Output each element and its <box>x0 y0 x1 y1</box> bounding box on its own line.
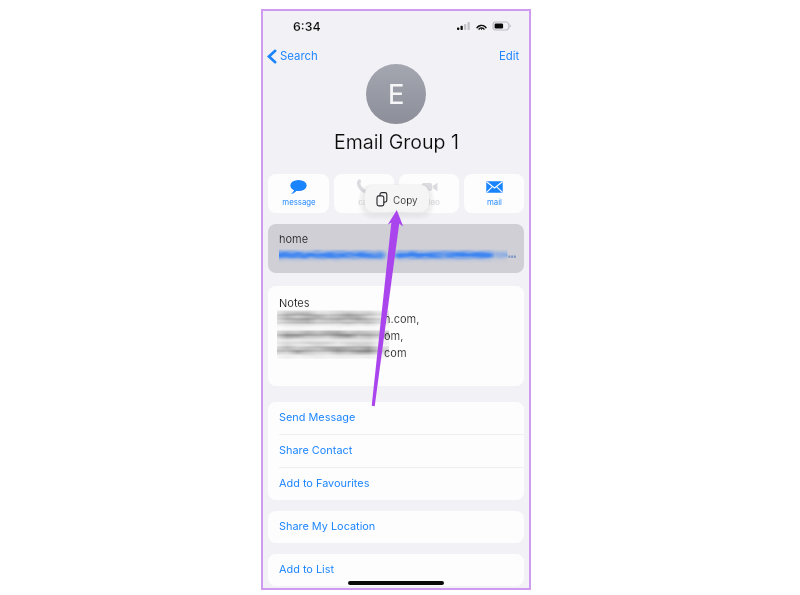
staticText: video <box>419 197 440 206</box>
staticText: message <box>282 197 316 206</box>
staticText: Share Contact <box>279 443 353 456</box>
staticText: Search <box>280 49 318 63</box>
button[interactable]: call <box>334 174 394 213</box>
staticText: Notes <box>279 296 310 309</box>
staticText: Add to Favourites <box>279 476 370 489</box>
button[interactable]: Copy <box>365 185 429 212</box>
staticText: com <box>384 346 407 359</box>
staticText: Edit <box>499 49 520 63</box>
button[interactable]: Send Message <box>268 402 524 434</box>
button[interactable]: Share My Location <box>268 511 524 543</box>
staticText: home <box>279 232 309 245</box>
button[interactable]: Notes <box>268 286 524 386</box>
staticText: call <box>358 197 371 206</box>
button[interactable]: video <box>399 174 459 213</box>
button[interactable]: Add to Favourites <box>268 468 524 500</box>
staticText: Add to List <box>279 562 335 575</box>
staticText: 6:34 <box>293 19 321 34</box>
staticText: Send Message <box>279 410 356 423</box>
staticText: mail <box>487 197 502 206</box>
staticText: n.com, <box>384 312 420 325</box>
button[interactable]: Edit <box>495 46 524 66</box>
staticText: Share My Location <box>279 519 376 532</box>
button[interactable]: message <box>268 174 329 213</box>
button[interactable]: Share Contact <box>268 435 524 467</box>
button[interactable]: Search <box>264 46 322 66</box>
staticText: om, <box>384 329 404 342</box>
staticText: Email Group 1 <box>334 130 459 154</box>
staticText: E <box>388 78 405 111</box>
staticText: Copy <box>393 194 418 206</box>
button[interactable]: home <box>268 224 524 273</box>
button[interactable]: Add to List <box>268 554 524 586</box>
button[interactable]: mail <box>464 174 524 213</box>
